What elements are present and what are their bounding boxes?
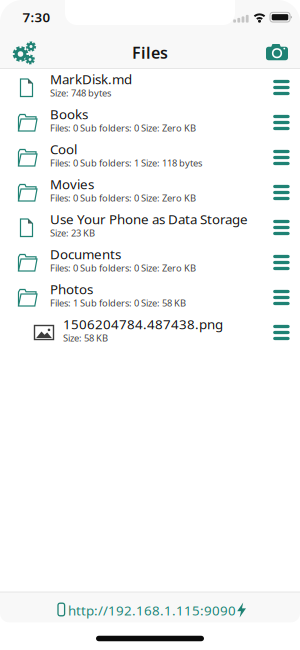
button[interactable]: Photos (0, 279, 300, 314)
button[interactable]: Actions for Books (264, 104, 298, 139)
staticText: Cool (50, 140, 77, 158)
button[interactable]: http://192.168.1.115:9090 (0, 591, 300, 622)
staticText: http://192.168.1.115:9090 (68, 601, 236, 619)
staticText: Size: 748 bytes (50, 87, 111, 99)
staticText: Documents (50, 245, 121, 263)
staticText: Files: 0 Sub folders: 0 Size: Zero KB (50, 192, 196, 204)
staticText: 7:30 (22, 8, 50, 26)
button[interactable]: Movies (0, 174, 300, 209)
button[interactable]: Actions for 1506204784.487438.png (264, 314, 298, 349)
button[interactable]: Actions for Movies (264, 174, 298, 209)
button[interactable]: Actions for MarkDisk.md (264, 69, 298, 104)
staticText: Size: 58 KB (63, 332, 108, 344)
button[interactable]: Camera (257, 34, 297, 70)
staticText: Books (50, 105, 88, 123)
button[interactable]: Use Your Phone as Data Storage (0, 209, 300, 244)
staticText: Files: 0 Sub folders: 0 Size: Zero KB (50, 262, 196, 274)
button[interactable]: Documents (0, 244, 300, 279)
staticText: Files (132, 42, 168, 63)
button[interactable]: Cool (0, 139, 300, 174)
button[interactable]: Settings (0, 34, 44, 70)
staticText: Files: 1 Sub folders: 0 Size: 58 KB (50, 297, 186, 309)
staticText: Use Your Phone as Data Storage (50, 210, 248, 228)
button[interactable]: 1506204784.487438.png (0, 314, 300, 349)
button[interactable]: Actions for Use Your Phone as Data Stora… (264, 209, 298, 244)
button[interactable]: Actions for Cool (264, 139, 298, 174)
button[interactable]: MarkDisk.md (0, 69, 300, 104)
staticText: Files: 0 Sub folders: 1 Size: 118 bytes (50, 157, 202, 169)
button[interactable]: Actions for Documents (264, 244, 298, 279)
staticText: MarkDisk.md (50, 70, 132, 88)
staticText: 1506204784.487438.png (63, 315, 223, 333)
button[interactable]: Books (0, 104, 300, 139)
button[interactable]: Actions for Photos (264, 279, 298, 314)
staticText: Files: 0 Sub folders: 0 Size: Zero KB (50, 122, 196, 134)
staticText: Size: 23 KB (50, 227, 95, 239)
staticText: Movies (50, 175, 94, 193)
staticText: Photos (50, 280, 93, 298)
